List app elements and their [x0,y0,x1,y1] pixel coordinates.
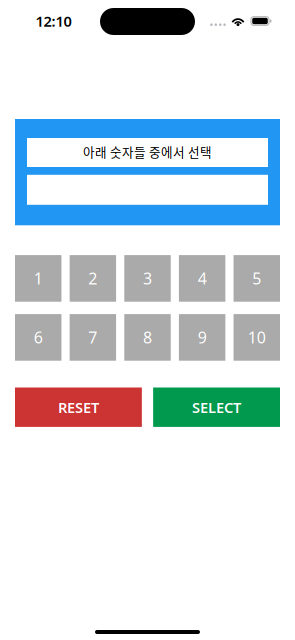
button[interactable]: 3 [124,255,171,302]
button[interactable]: 6 [15,314,61,361]
button[interactable]: 선택된 숫자 [27,175,268,205]
staticText: 9 [198,327,207,348]
button[interactable]: 9 [179,314,225,361]
staticText: 2 [88,268,97,289]
button[interactable]: 아래 숫자들 중에서 선택 [27,138,268,167]
staticText: RESET [58,397,99,417]
staticText: 10 [248,327,266,348]
staticText: 12:10 [35,11,71,31]
button[interactable]: 5 [234,255,280,302]
button[interactable]: 4 [179,255,225,302]
staticText: 1 [34,268,43,289]
button[interactable]: SELECT [153,387,280,427]
button[interactable]: 8 [124,314,171,361]
button[interactable]: RESET [15,387,142,427]
button[interactable]: 7 [70,314,116,361]
staticText: 4 [198,268,207,289]
staticText: 6 [34,327,43,348]
button[interactable]: 1 [15,255,61,302]
staticText: 5 [252,268,261,289]
staticText: SELECT [192,397,241,417]
button[interactable]: 2 [70,255,116,302]
staticText: 아래 숫자들 중에서 선택 [83,142,212,160]
staticText: 8 [143,327,152,348]
staticText: 7 [88,327,97,348]
button[interactable]: 10 [234,314,280,361]
staticText: 3 [143,268,152,289]
